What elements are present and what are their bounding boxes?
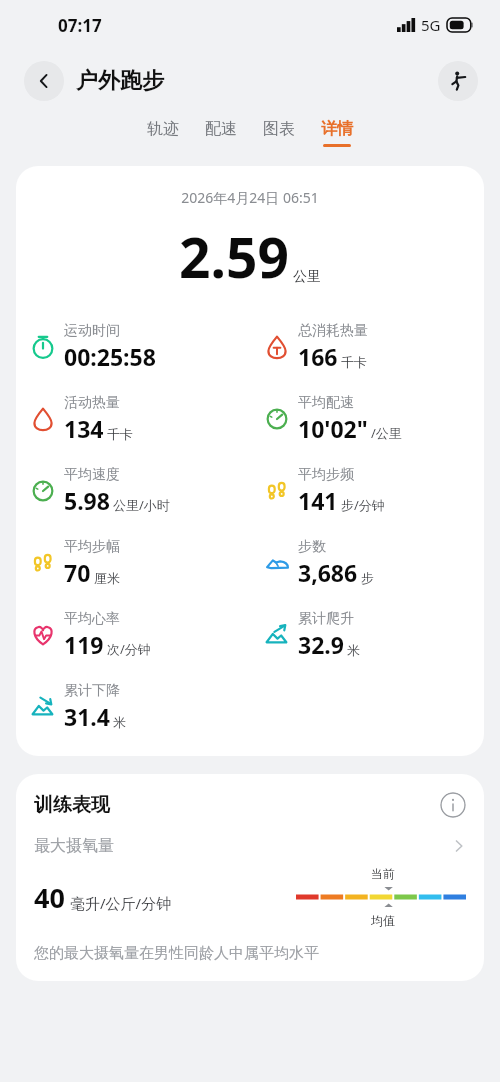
button[interactable]: 平均速度 — [16, 466, 250, 516]
staticText: 厘米 — [94, 570, 120, 586]
staticText: 当前 — [371, 866, 395, 881]
button[interactable]: 平均配速 — [250, 394, 484, 444]
staticText: 步 — [361, 570, 374, 586]
staticText: 2026年4月24日 06:51 — [16, 188, 484, 207]
staticText: 毫升/公斤/分钟 — [70, 893, 172, 913]
staticText: 米 — [347, 642, 360, 658]
staticText: 轨迹 — [147, 119, 179, 139]
button[interactable]: 最大摄氧量 — [34, 836, 466, 856]
staticText: 次/分钟 — [107, 640, 151, 658]
staticText: 累计下降 — [64, 682, 120, 700]
button[interactable]: 运动类型 — [438, 61, 478, 101]
button[interactable]: 说明 — [440, 792, 466, 818]
staticText: 户外跑步 — [76, 67, 164, 95]
staticText: 图表 — [263, 119, 295, 139]
staticText: 32.9 — [298, 629, 344, 660]
staticText: 公里/小时 — [113, 496, 170, 514]
staticText: 千卡 — [107, 426, 133, 442]
button[interactable]: 总消耗热量 — [250, 322, 484, 372]
staticText: 步/分钟 — [341, 496, 385, 514]
staticText: 训练表现 — [34, 793, 110, 817]
staticText: 平均心率 — [64, 610, 120, 628]
button[interactable]: 返回 — [24, 61, 64, 101]
staticText: 详情 — [321, 119, 353, 139]
staticText: 米 — [113, 714, 126, 730]
staticText: 3,686 — [298, 557, 358, 588]
staticText: 平均速度 — [64, 466, 120, 484]
button[interactable]: 累计爬升 — [250, 610, 484, 660]
button[interactable]: 平均步幅 — [16, 538, 250, 588]
button[interactable]: 平均心率 — [16, 610, 250, 660]
staticText: 5.98 — [64, 485, 110, 516]
staticText: 平均步频 — [298, 466, 354, 484]
staticText: 119 — [64, 629, 104, 660]
staticText: 平均步幅 — [64, 538, 120, 556]
button[interactable]: 运动时间 — [16, 322, 250, 372]
staticText: 40 — [34, 879, 65, 916]
button[interactable]: 活动热量 — [16, 394, 250, 444]
staticText: 您的最大摄氧量在男性同龄人中属平均水平 — [34, 944, 319, 963]
staticText: 134 — [64, 413, 104, 444]
button[interactable]: 详情 — [308, 116, 366, 150]
staticText: 31.4 — [64, 701, 110, 732]
button[interactable]: 图表 — [250, 116, 308, 150]
staticText: 配速 — [205, 119, 237, 139]
button[interactable]: 配速 — [192, 116, 250, 150]
staticText: 活动热量 — [64, 394, 120, 412]
staticText: 70 — [64, 557, 91, 588]
staticText: 166 — [298, 341, 338, 372]
button[interactable]: 步数 — [250, 538, 484, 588]
staticText: 均值 — [371, 913, 395, 928]
staticText: /公里 — [371, 424, 402, 442]
staticText: 步数 — [298, 538, 326, 556]
button[interactable]: 累计下降 — [16, 682, 250, 732]
staticText: 千卡 — [341, 354, 367, 370]
staticText: 最大摄氧量 — [34, 836, 114, 856]
staticText: 2.59 — [179, 219, 289, 294]
button[interactable]: 平均步频 — [250, 466, 484, 516]
staticText: 公里 — [293, 268, 321, 286]
staticText: 07:17 — [58, 14, 102, 37]
staticText: 平均配速 — [298, 394, 354, 412]
staticText: 10'02" — [298, 413, 368, 444]
staticText: 累计爬升 — [298, 610, 354, 628]
staticText: 141 — [298, 485, 338, 516]
staticText: 总消耗热量 — [298, 322, 368, 340]
staticText: 00:25:58 — [64, 341, 156, 372]
staticText: 5G — [421, 15, 441, 35]
staticText: 运动时间 — [64, 322, 120, 340]
button[interactable]: 轨迹 — [134, 116, 192, 150]
